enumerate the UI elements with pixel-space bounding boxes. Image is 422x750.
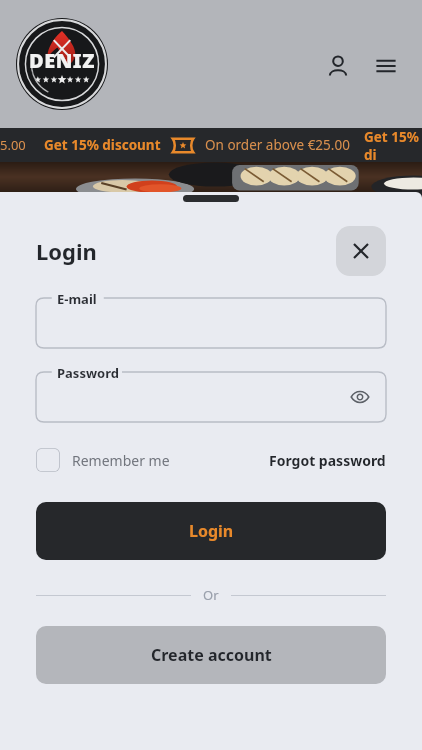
button[interactable]: Account <box>318 46 358 86</box>
button[interactable]: 5.00 <box>0 128 422 162</box>
button[interactable]: Create account <box>36 626 386 684</box>
staticText: Or <box>203 586 219 604</box>
staticText: Remember me <box>72 451 170 470</box>
button[interactable]: Close <box>336 226 386 276</box>
button[interactable]: Menu <box>366 46 406 86</box>
staticText: On order above €25.00 <box>205 136 350 154</box>
staticText: 5.00 <box>0 136 26 154</box>
staticText: Password <box>57 364 119 382</box>
button[interactable]: Remember me <box>36 448 170 472</box>
button[interactable]: Show password <box>346 383 374 411</box>
button[interactable]: Login <box>36 502 386 560</box>
staticText: Login <box>189 520 234 542</box>
staticText: Get 15% discount <box>44 136 161 154</box>
button[interactable]: Forgot password <box>269 451 386 470</box>
button[interactable]: E-mail <box>36 298 386 348</box>
staticText: Get 15% di <box>364 128 422 162</box>
staticText: E-mail <box>57 290 97 308</box>
staticText: DENIZ <box>29 47 95 74</box>
button[interactable]: Password <box>36 372 386 422</box>
staticText: Login <box>36 236 97 266</box>
staticText: Create account <box>151 644 272 666</box>
staticText: Forgot password <box>269 451 386 470</box>
